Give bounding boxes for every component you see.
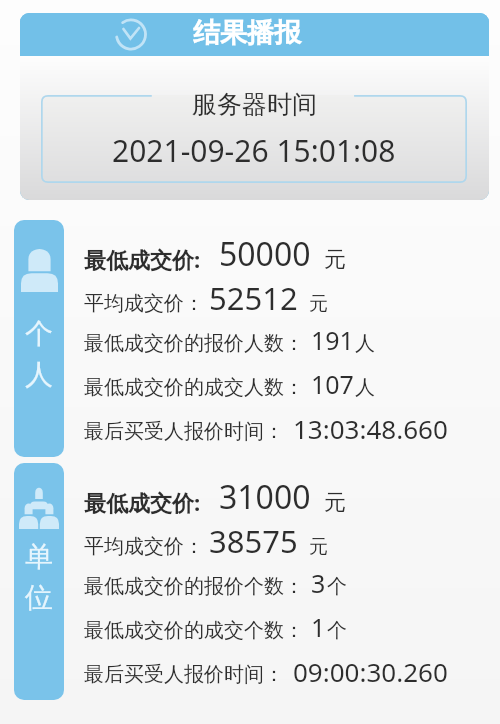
staticText: 服务器时间 (192, 89, 317, 120)
staticText: 最低成交价的成交人数： (84, 375, 304, 400)
staticText: 最后买受人报价时间： (84, 419, 284, 444)
staticText: 13:03:48.660 (293, 411, 448, 446)
staticText: 最低成交价的报价人数： (84, 331, 304, 356)
staticText: 人 (355, 331, 375, 356)
staticText: 人 (25, 357, 53, 392)
staticText: 元 (324, 489, 346, 517)
staticText: 元 (309, 535, 328, 559)
staticText: 位 (25, 580, 53, 615)
staticText: 50000 (219, 232, 311, 276)
staticText: 2021-09-26 15:01:08 (112, 130, 396, 171)
staticText: 52512 (209, 277, 298, 319)
staticText: 38575 (209, 520, 298, 562)
staticText: 个 (25, 316, 53, 351)
button[interactable]: 个人 (14, 220, 64, 457)
staticText: 1 (311, 610, 326, 644)
button[interactable]: 单位 (14, 463, 64, 700)
staticText: 人 (355, 375, 375, 400)
staticText: 元 (324, 246, 346, 274)
staticText: 107 (311, 367, 354, 401)
staticText: 最后买受人报价时间： (84, 662, 284, 687)
staticText: 个 (327, 574, 347, 599)
staticText: 最低成交价的报价个数： (84, 574, 304, 599)
staticText: 平均成交价： (84, 534, 204, 559)
staticText: 元 (309, 292, 328, 316)
staticText: 191 (311, 323, 354, 357)
staticText: 结果播报 (193, 16, 301, 50)
staticText: 单 (25, 539, 53, 574)
staticText: 最低成交价: (84, 487, 201, 517)
staticText: 最低成交价的成交个数： (84, 618, 304, 643)
staticText: 最低成交价: (84, 244, 201, 274)
staticText: 31000 (219, 475, 311, 519)
staticText: 个 (327, 618, 347, 643)
staticText: 09:00:30.260 (293, 654, 448, 689)
staticText: 3 (311, 566, 326, 600)
staticText: 平均成交价： (84, 291, 204, 316)
